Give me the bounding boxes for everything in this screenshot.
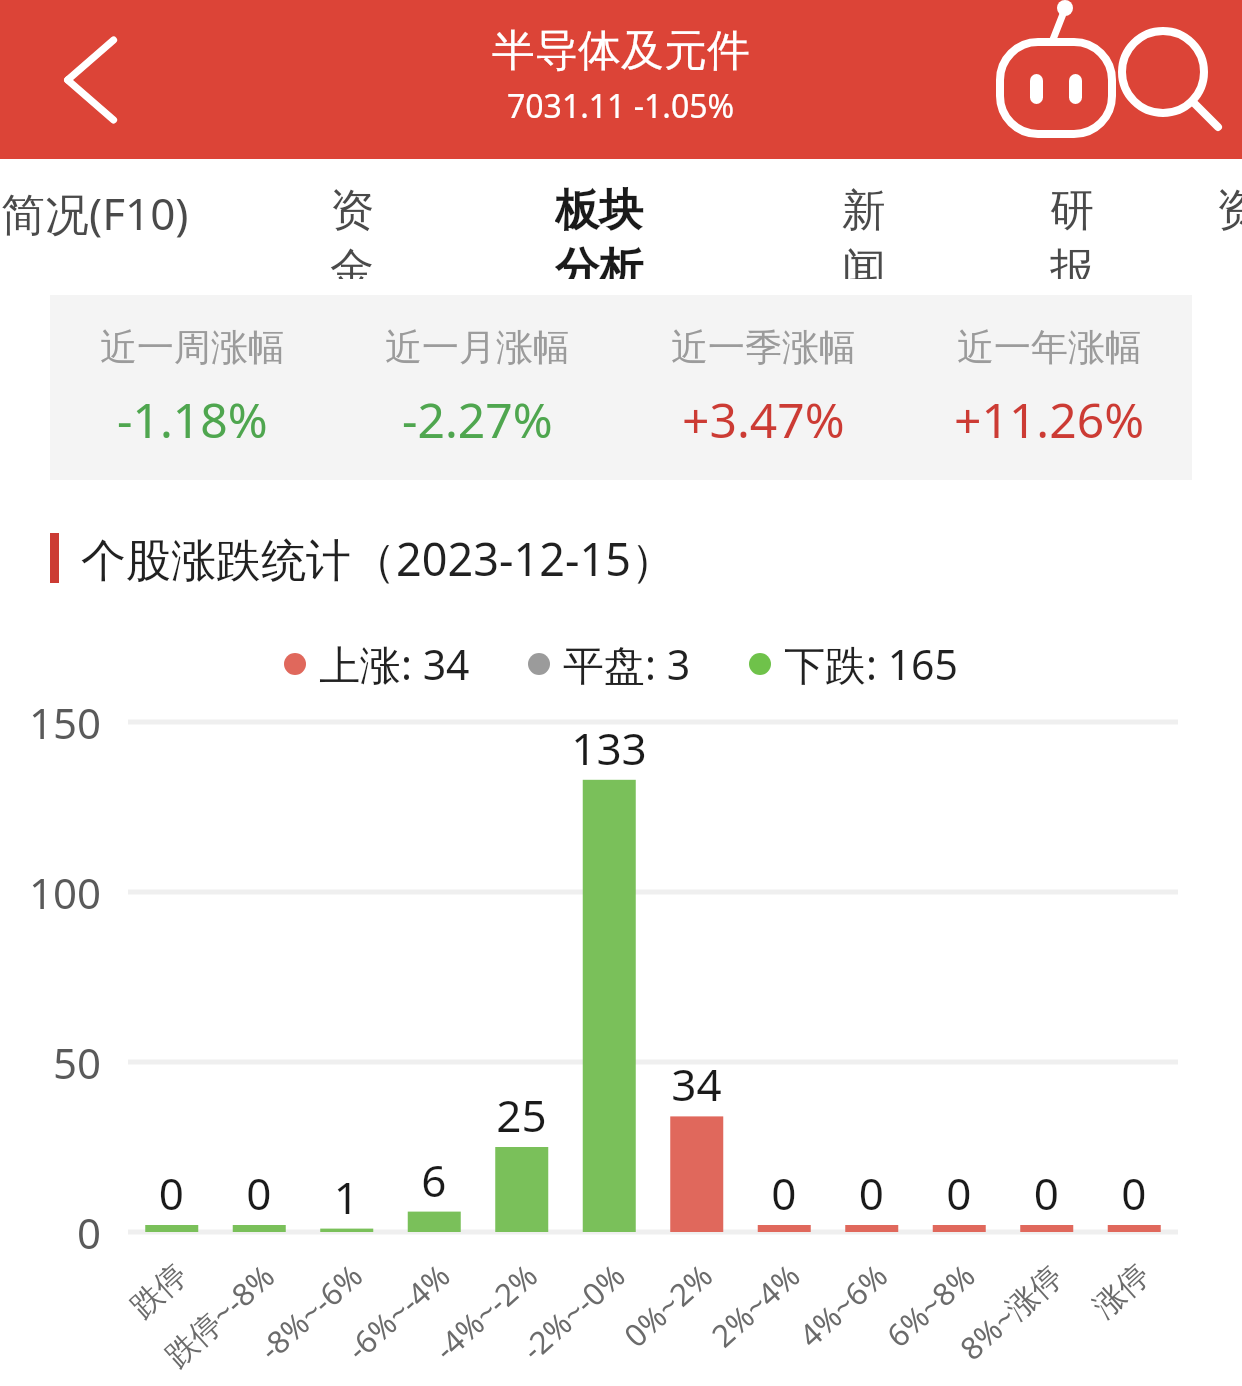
staticText: 近一年涨幅 [957,324,1142,371]
staticText: 半导体及元件 [492,24,750,78]
button[interactable]: 上涨: 34 [284,636,470,692]
staticText: 平盘: 3 [563,636,691,692]
button[interactable]: 资 [1216,159,1242,279]
button[interactable]: 板块分析 [555,159,682,279]
button[interactable]: Search [1112,24,1224,136]
staticText: +3.47% [682,387,845,452]
button[interactable]: 资金 [330,159,393,279]
button[interactable]: 下跌: 165 [749,636,959,692]
button[interactable]: 近一季涨幅 [620,295,906,480]
staticText: +11.26% [954,387,1145,452]
staticText: 近一月涨幅 [385,324,570,371]
button[interactable]: 近一年涨幅 [906,295,1192,480]
button[interactable]: Assistant [1000,24,1112,136]
staticText: 研报 [1050,183,1113,279]
button[interactable]: 近一周涨幅 [50,295,335,480]
button[interactable]: 新闻 [842,159,905,279]
staticText: 7031.11 -1.05% [507,84,735,128]
staticText: 新闻 [842,183,905,279]
staticText: 下跌: 165 [784,636,959,692]
button[interactable]: 简况(F10) [0,159,206,279]
staticText: -1.18% [117,387,268,452]
staticText: 个股涨跌统计（2023-12-15） [81,528,676,589]
staticText: 近一季涨幅 [671,324,856,371]
staticText: 近一周涨幅 [100,324,285,371]
staticText: 资 [1216,183,1242,238]
staticText: -2.27% [402,387,553,452]
button[interactable]: 平盘: 3 [528,636,691,692]
button[interactable]: 近一月涨幅 [335,295,620,480]
staticText: 简况(F10) [1,183,189,243]
staticText: 上涨: 34 [319,636,470,692]
button[interactable]: Back [28,24,140,136]
staticText: 资金 [330,183,393,279]
button[interactable]: 研报 [1050,159,1113,279]
staticText: 板块分析 [555,183,682,279]
